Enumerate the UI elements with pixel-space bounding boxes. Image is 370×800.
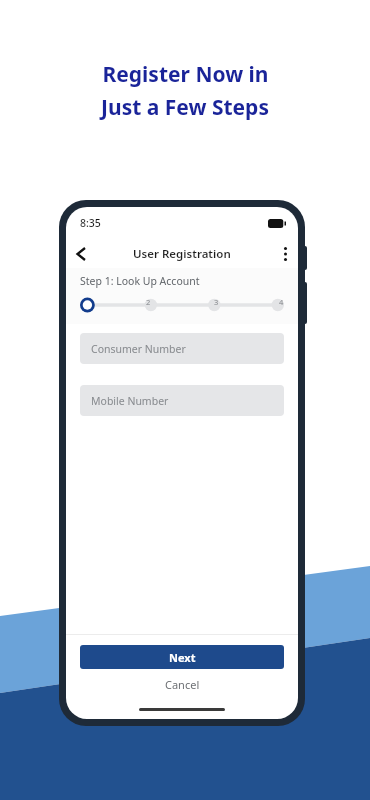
staticText: 8:35 bbox=[80, 216, 101, 230]
staticText: Cancel bbox=[165, 677, 200, 692]
button[interactable]: More options bbox=[272, 241, 298, 267]
button[interactable]: Next bbox=[80, 645, 284, 669]
staticText: User Registration bbox=[133, 246, 231, 262]
button[interactable]: Consumer Number bbox=[80, 333, 284, 364]
button[interactable]: Back bbox=[66, 240, 94, 268]
staticText: 4 bbox=[279, 297, 284, 307]
staticText: Register Now in bbox=[102, 60, 269, 89]
button[interactable]: Mobile Number bbox=[80, 385, 284, 416]
staticText: Next bbox=[169, 650, 196, 665]
staticText: 3 bbox=[214, 297, 219, 307]
staticText: Just a Few Steps bbox=[101, 93, 269, 122]
staticText: Mobile Number bbox=[91, 394, 169, 408]
button[interactable]: Cancel bbox=[66, 669, 298, 700]
staticText: 2 bbox=[146, 297, 151, 307]
staticText: Step 1: Look Up Account bbox=[80, 274, 200, 288]
staticText: Consumer Number bbox=[91, 342, 186, 356]
